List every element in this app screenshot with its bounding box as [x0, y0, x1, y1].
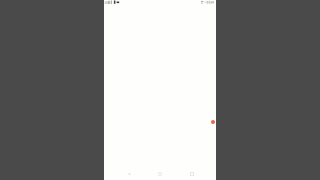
button[interactable]: Recents [185, 167, 199, 180]
button[interactable]: Home [153, 167, 167, 180]
